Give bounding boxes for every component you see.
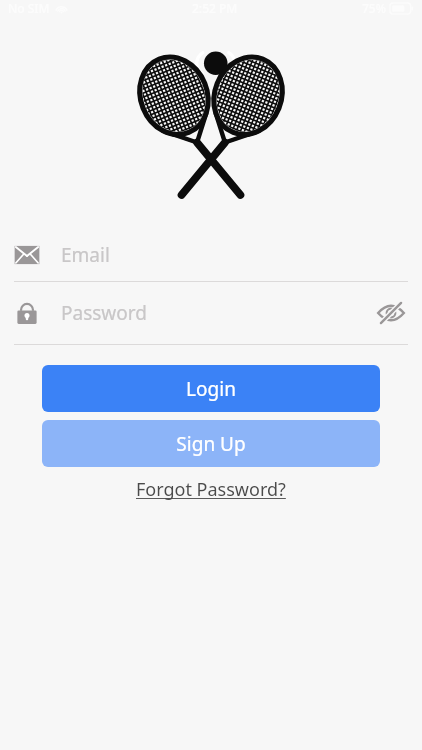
button[interactable]: Forgot Password? <box>128 474 294 505</box>
button[interactable]: Login <box>42 365 380 412</box>
staticText: Sign Up <box>176 431 246 457</box>
button[interactable]: Email <box>0 229 422 281</box>
button[interactable]: Sign Up <box>42 420 380 467</box>
staticText: Email <box>61 242 110 268</box>
staticText: Password <box>61 300 374 326</box>
button[interactable]: Show password <box>374 296 408 330</box>
staticText: Forgot Password? <box>136 477 286 502</box>
button[interactable]: Password <box>0 282 422 344</box>
staticText: Login <box>186 376 236 402</box>
